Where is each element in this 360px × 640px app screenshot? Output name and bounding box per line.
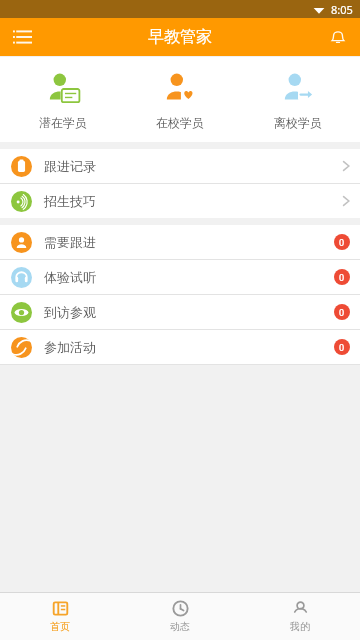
button[interactable]: 体验试听 bbox=[0, 260, 360, 294]
staticText: 早教管家 bbox=[148, 27, 212, 47]
staticText: 需要跟进 bbox=[44, 234, 96, 250]
staticText: 跟进记录 bbox=[44, 158, 96, 174]
button[interactable]: 跟进记录 bbox=[0, 149, 360, 183]
button[interactable]: 离校学员 bbox=[243, 57, 353, 142]
staticText: 8:05 bbox=[331, 2, 353, 17]
button[interactable]: 需要跟进 bbox=[0, 225, 360, 259]
button[interactable]: 在校学员 bbox=[125, 57, 235, 142]
button[interactable]: 参加活动 bbox=[0, 330, 360, 364]
staticText: 动态 bbox=[170, 620, 190, 633]
staticText: 潜在学员 bbox=[39, 115, 87, 130]
button[interactable]: Notifications bbox=[316, 18, 360, 56]
staticText: 0 bbox=[339, 271, 345, 283]
button[interactable]: Menu bbox=[0, 18, 44, 56]
staticText: 0 bbox=[339, 306, 345, 318]
staticText: 首页 bbox=[50, 620, 70, 633]
staticText: 在校学员 bbox=[156, 115, 204, 130]
staticText: 0 bbox=[339, 236, 345, 248]
staticText: 离校学员 bbox=[274, 115, 322, 130]
button[interactable]: 我的 bbox=[240, 593, 360, 640]
button[interactable]: 动态 bbox=[120, 593, 240, 640]
staticText: 我的 bbox=[290, 620, 310, 633]
staticText: 招生技巧 bbox=[44, 193, 96, 209]
button[interactable]: 招生技巧 bbox=[0, 184, 360, 218]
button[interactable]: 到访参观 bbox=[0, 295, 360, 329]
button[interactable]: 潜在学员 bbox=[8, 57, 118, 142]
staticText: 体验试听 bbox=[44, 269, 96, 285]
staticText: 0 bbox=[339, 341, 345, 353]
staticText: 参加活动 bbox=[44, 339, 96, 355]
staticText: 到访参观 bbox=[44, 304, 96, 320]
button[interactable]: 首页 bbox=[0, 593, 120, 640]
